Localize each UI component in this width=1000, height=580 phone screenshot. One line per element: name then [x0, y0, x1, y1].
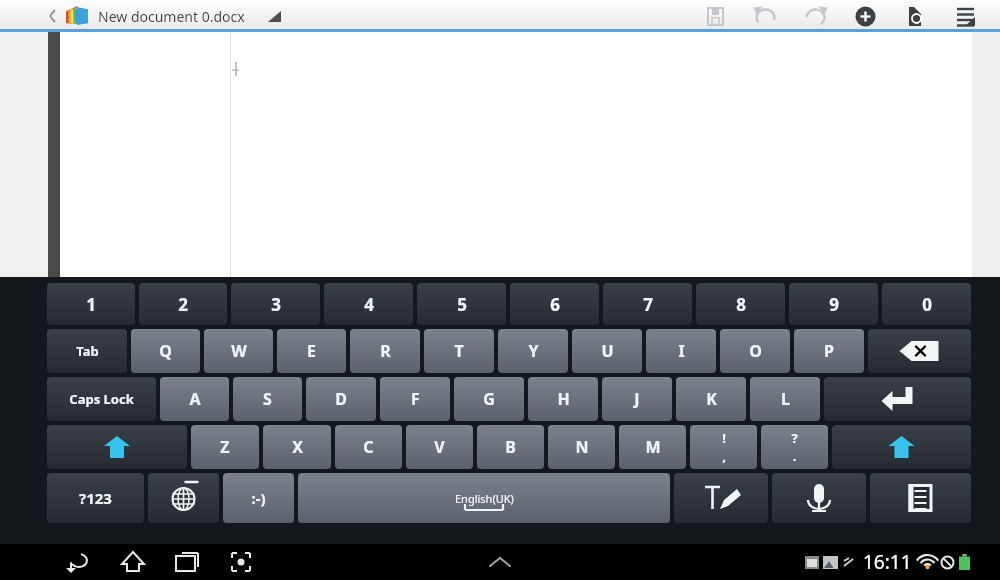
button[interactable]: Insert [840, 2, 890, 30]
button[interactable]: Space [298, 473, 670, 523]
staticText: V [434, 436, 445, 458]
button[interactable]: 8 [696, 283, 785, 325]
button[interactable]: 2 [139, 283, 227, 325]
button[interactable]: Save [690, 2, 740, 30]
button[interactable]: ! , [690, 425, 757, 469]
button[interactable]: D [306, 377, 376, 421]
staticText: 6 [550, 293, 560, 316]
staticText: O [749, 340, 762, 362]
staticText: 8 [736, 293, 746, 316]
button[interactable]: 0 [882, 283, 971, 325]
staticText: Tab [76, 342, 99, 360]
staticText: G [483, 388, 495, 410]
button[interactable]: Back [52, 544, 106, 580]
button[interactable]: B [477, 425, 544, 469]
button[interactable]: I [646, 329, 716, 373]
button[interactable]: 9 [789, 283, 878, 325]
button[interactable]: H [528, 377, 598, 421]
staticText: B [505, 436, 516, 458]
button[interactable]: T [424, 329, 494, 373]
button[interactable]: C [335, 425, 402, 469]
button[interactable]: E [277, 329, 346, 373]
staticText: 0 [922, 293, 932, 316]
button[interactable]: Caps Lock [47, 377, 156, 421]
button[interactable]: Undo [740, 2, 790, 30]
button[interactable]: ?123 [47, 473, 144, 523]
button[interactable]: 3 [231, 283, 320, 325]
button[interactable]: F [380, 377, 450, 421]
button[interactable]: K [676, 377, 746, 421]
staticText: R [380, 340, 391, 362]
button[interactable]: Tab [47, 329, 127, 373]
staticText: 9 [829, 293, 839, 316]
button[interactable]: Home [106, 544, 160, 580]
staticText: English(UK) [455, 491, 514, 506]
button[interactable]: 6 [510, 283, 599, 325]
staticText: N [575, 436, 589, 458]
staticText: C [363, 436, 374, 458]
staticText: S [263, 388, 272, 410]
staticText: 7 [643, 293, 653, 316]
staticText: A [189, 388, 201, 410]
button[interactable]: Screenshot [214, 544, 268, 580]
button[interactable]: Shift [47, 425, 187, 469]
button[interactable]: Enter [824, 377, 971, 421]
staticText: J [634, 388, 640, 410]
button[interactable]: N [548, 425, 615, 469]
staticText: M [645, 436, 661, 458]
staticText: P [824, 340, 834, 362]
staticText: U [601, 340, 614, 362]
button[interactable]: :-) [223, 473, 294, 523]
staticText: Y [528, 340, 539, 362]
button[interactable]: Z [191, 425, 259, 469]
button[interactable]: 1 [47, 283, 135, 325]
staticText: :-) [251, 488, 266, 508]
staticText: 2 [178, 293, 188, 316]
button[interactable]: Y [498, 329, 568, 373]
button[interactable]: Redo [790, 2, 840, 30]
button[interactable]: Back [46, 3, 60, 29]
staticText: Q [159, 340, 172, 362]
button[interactable]: Recents [160, 544, 214, 580]
button[interactable]: R [350, 329, 420, 373]
staticText: 16:11 [863, 549, 912, 575]
button[interactable]: View [890, 2, 940, 30]
button[interactable]: G [454, 377, 524, 421]
staticText: T [454, 340, 464, 362]
button[interactable]: 5 [417, 283, 506, 325]
button[interactable]: Change language [148, 473, 219, 523]
button[interactable]: A [160, 377, 229, 421]
staticText: 1 [86, 293, 96, 316]
staticText: I [678, 340, 685, 362]
button[interactable]: W [204, 329, 273, 373]
staticText: H [557, 388, 570, 410]
staticText: X [292, 436, 303, 458]
button[interactable]: Q [131, 329, 200, 373]
button[interactable]: O [720, 329, 790, 373]
button[interactable]: P [794, 329, 864, 373]
button[interactable]: V [406, 425, 473, 469]
staticText: L [781, 388, 790, 410]
button[interactable]: U [572, 329, 642, 373]
button[interactable]: Backspace [868, 329, 971, 373]
button[interactable]: New document 0.docx [98, 7, 245, 26]
staticText: Z [220, 436, 230, 458]
button[interactable]: Shift [832, 425, 971, 469]
button[interactable]: Menu [940, 2, 990, 30]
staticText: F [411, 388, 420, 410]
button[interactable]: Voice input [772, 473, 866, 523]
button[interactable]: Handwriting [674, 473, 768, 523]
staticText: 3 [271, 293, 281, 316]
button[interactable]: 4 [324, 283, 413, 325]
staticText: ?123 [79, 488, 112, 508]
button[interactable]: X [263, 425, 331, 469]
button[interactable]: M [619, 425, 686, 469]
button[interactable]: S [233, 377, 302, 421]
staticText: New document 0.docx [98, 7, 245, 26]
staticText: E [307, 340, 316, 362]
button[interactable]: J [602, 377, 672, 421]
button[interactable]: 7 [603, 283, 692, 325]
button[interactable]: ? . [761, 425, 828, 469]
button[interactable]: L [750, 377, 820, 421]
button[interactable]: Clipboard [870, 473, 971, 523]
